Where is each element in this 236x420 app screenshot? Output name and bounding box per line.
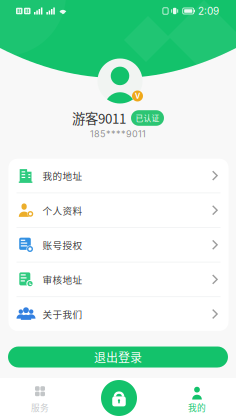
staticText: 账号授权 xyxy=(42,238,82,252)
staticText: 185****9011 xyxy=(90,128,146,139)
button[interactable]: 我的 xyxy=(162,379,232,419)
button[interactable]: 服务 xyxy=(5,379,75,419)
staticText: 关于我们 xyxy=(42,307,82,321)
button[interactable]: 账号授权 xyxy=(8,228,228,262)
staticText: 个人资料 xyxy=(42,203,82,217)
button[interactable]: 个人资料 xyxy=(8,193,228,227)
staticText: 2:09 xyxy=(198,5,219,17)
staticText: 我的 xyxy=(188,401,206,414)
button[interactable]: 退出登录 xyxy=(8,346,228,367)
staticText: V xyxy=(135,90,140,101)
button[interactable]: 我的地址 xyxy=(8,159,228,192)
staticText: 审核地址 xyxy=(42,272,82,286)
button[interactable]: 关于我们 xyxy=(8,297,228,331)
staticText: 已认证 xyxy=(135,112,159,124)
button[interactable]: 审核地址 xyxy=(8,262,228,296)
staticText: 我的地址 xyxy=(42,169,82,182)
button[interactable]: Lock xyxy=(99,378,139,418)
staticText: 退出登录 xyxy=(94,348,142,366)
staticText: 游客9011 xyxy=(72,108,126,128)
staticText: 服务 xyxy=(31,401,49,414)
